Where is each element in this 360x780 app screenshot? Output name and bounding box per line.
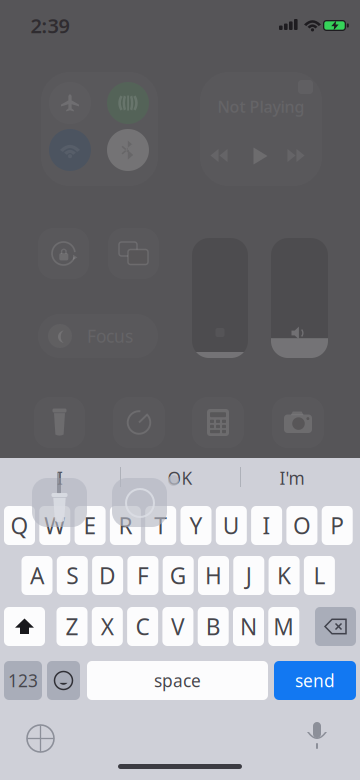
button[interactable]: I	[251, 506, 282, 545]
button[interactable]: W	[39, 506, 70, 545]
staticText: W	[44, 510, 65, 540]
staticText: space	[154, 669, 201, 692]
staticText: G	[170, 560, 187, 590]
button[interactable]: Camera	[272, 397, 324, 448]
staticText: O	[293, 510, 311, 540]
staticText: I'm	[279, 466, 304, 489]
staticText: I	[263, 510, 271, 540]
button[interactable]: Screen Mirroring	[108, 228, 159, 279]
button[interactable]: E	[75, 506, 106, 545]
staticText: Y	[189, 510, 202, 540]
button[interactable]: Z	[56, 607, 87, 646]
button[interactable]: Next Track	[287, 149, 305, 162]
button[interactable]: L	[304, 556, 335, 595]
staticText: U	[223, 510, 240, 540]
button[interactable]: V	[162, 607, 193, 646]
staticText: X	[101, 611, 114, 641]
staticText: 123	[8, 669, 38, 692]
button[interactable]: space	[87, 661, 268, 700]
staticText: J	[246, 560, 252, 590]
button[interactable]: Play	[253, 147, 267, 164]
button[interactable]: C	[127, 607, 158, 646]
staticText: S	[66, 560, 78, 590]
staticText: H	[205, 560, 222, 590]
staticText: P	[330, 510, 344, 540]
button[interactable]: N	[233, 607, 264, 646]
button[interactable]: Cellular Data	[107, 82, 149, 124]
staticText: C	[136, 611, 150, 641]
staticText: A	[30, 560, 44, 590]
staticText: 2:39	[30, 12, 69, 39]
button[interactable]: OK	[167, 466, 192, 489]
button[interactable]: X	[92, 607, 123, 646]
button[interactable]: Airplane Mode	[49, 82, 91, 124]
staticText: Z	[65, 611, 78, 641]
button[interactable]: Next Keyboard	[27, 725, 54, 752]
button[interactable]: D	[92, 556, 123, 595]
button[interactable]: H	[198, 556, 229, 595]
button[interactable]: Q	[4, 506, 35, 545]
button[interactable]: I	[57, 466, 63, 489]
button[interactable]: Brightness	[192, 238, 248, 358]
button[interactable]: send	[274, 661, 356, 700]
button[interactable]: Previous Track	[210, 149, 228, 162]
staticText: R	[118, 510, 132, 540]
button[interactable]: I'm	[279, 466, 304, 489]
button[interactable]: Y	[180, 506, 211, 545]
button[interactable]: Dictate	[306, 722, 328, 752]
button[interactable]: Rotation Lock	[38, 228, 89, 279]
button[interactable]: M	[268, 607, 299, 646]
button[interactable]: G	[163, 556, 194, 595]
button[interactable]: Calculator	[192, 397, 244, 448]
button[interactable]: 123	[4, 661, 42, 700]
button[interactable]: O	[286, 506, 317, 545]
button[interactable]: U	[216, 506, 247, 545]
staticText: F	[137, 560, 149, 590]
staticText: D	[99, 560, 116, 590]
button[interactable]: B	[198, 607, 229, 646]
button[interactable]: Focus	[38, 314, 158, 358]
staticText: Focus	[87, 324, 133, 347]
button[interactable]: Bluetooth	[107, 129, 149, 171]
staticText: T	[154, 510, 167, 540]
staticText: B	[206, 611, 221, 641]
staticText: Q	[10, 510, 28, 540]
staticText: M	[273, 611, 294, 641]
button[interactable]: R	[110, 506, 141, 545]
staticText: I	[57, 466, 63, 489]
staticText: L	[313, 560, 325, 590]
button[interactable]: K	[269, 556, 300, 595]
staticText: K	[277, 560, 291, 590]
staticText: send	[295, 669, 335, 692]
button[interactable]: P	[322, 506, 353, 545]
button[interactable]: Flashlight	[34, 397, 85, 448]
staticText: N	[240, 611, 257, 641]
staticText: Not Playing	[217, 96, 304, 117]
button[interactable]: S	[57, 556, 88, 595]
button[interactable]: Emoji	[47, 661, 80, 700]
staticText: E	[84, 510, 97, 540]
button[interactable]: T	[145, 506, 176, 545]
button[interactable]: Shift	[4, 607, 45, 646]
button[interactable]: Delete	[315, 607, 356, 646]
staticText: V	[171, 611, 185, 641]
button[interactable]: A	[21, 556, 52, 595]
button[interactable]: Volume	[271, 238, 328, 358]
button[interactable]: Timer	[113, 397, 165, 448]
button[interactable]: F	[127, 556, 158, 595]
staticText: OK	[167, 466, 192, 489]
button[interactable]: Wi-Fi	[49, 129, 91, 171]
button[interactable]: J	[233, 556, 264, 595]
